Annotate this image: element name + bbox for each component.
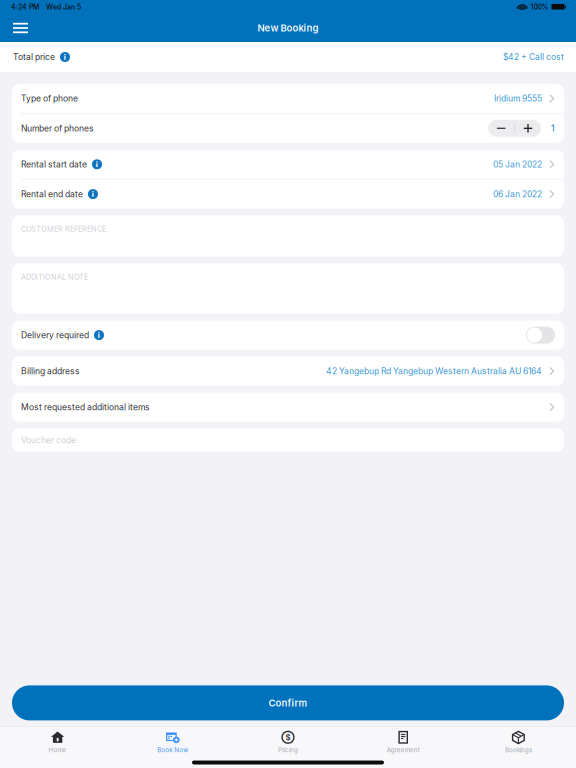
staticText: Most requested additional items [21,402,150,412]
staticText: 05 Jan 2022 [493,159,542,169]
staticText: $42 + Call cost [503,52,564,62]
staticText: Voucher code [21,435,76,445]
staticText: Pricing [278,746,298,754]
button[interactable]: Book Now [115,727,230,757]
staticText: 42 Yangebup Rd Yangebup Western Australi… [326,366,542,376]
button[interactable]: Rental end date [12,180,564,209]
button[interactable]: CUSTOMER REFERENCE [12,216,564,257]
staticText: Rental end date [21,189,83,199]
button[interactable]: Increase number of phones [515,120,541,137]
staticText: Agreement [387,746,420,754]
staticText: 4:24 PM [11,3,39,11]
button[interactable]: Bookings [461,727,576,757]
staticText: Home [49,746,67,754]
staticText: Iridium 9555 [494,93,542,104]
button[interactable]: Menu [7,15,34,41]
staticText: New Booking [257,22,318,34]
staticText: $ [285,732,290,742]
staticText: CUSTOMER REFERENCE [21,225,106,233]
staticText: Total price [13,52,55,62]
staticText: Type of phone [21,93,78,104]
staticText: Bookings [505,746,532,754]
button[interactable]: Rental start date [12,150,564,179]
button[interactable]: Decrease number of phones [488,120,514,137]
button[interactable]: Agreement [346,727,461,757]
staticText: Billing address [21,366,80,376]
button[interactable]: Voucher code [12,429,564,452]
button[interactable]: Billing address [12,357,564,386]
staticText: Wed Jan 5 [46,3,81,11]
staticText: ADDITIONAL NOTE [21,273,88,281]
staticText: Number of phones [21,123,94,133]
button[interactable]: Confirm [12,685,564,720]
staticText: Rental start date [21,159,87,169]
button[interactable]: Home [0,727,115,757]
staticText: 1 [551,123,555,133]
staticText: Delivery required [21,330,89,340]
button[interactable]: Most requested additional items [12,393,564,422]
staticText: Confirm [268,697,307,709]
staticText: 06 Jan 2022 [493,189,542,199]
staticText: Book Now [157,746,188,754]
button[interactable]: $ [230,727,346,757]
staticText: 100% [530,3,548,11]
button[interactable]: Delivery required [526,327,555,344]
button[interactable]: Type of phone [12,84,564,113]
